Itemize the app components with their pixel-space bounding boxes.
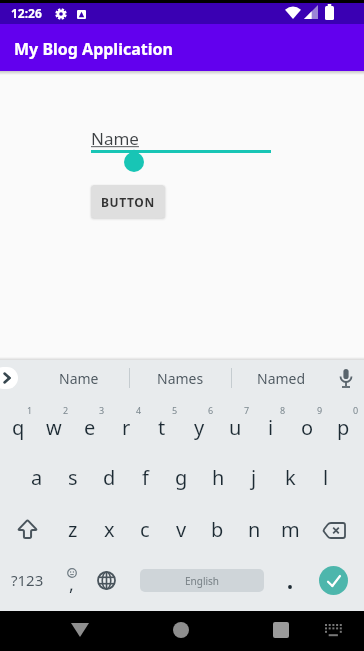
staticText: BUTTON [101,194,155,210]
button[interactable]: w [36,403,72,451]
staticText: , [69,572,74,597]
staticText: 6 [208,404,214,416]
staticText: w [46,414,62,441]
staticText: 2 [63,404,69,416]
button[interactable] [325,624,343,637]
button[interactable]: r [108,403,144,451]
button[interactable]: d [91,453,127,501]
button[interactable]: k [272,453,308,501]
staticText: My Blog Application [14,38,173,60]
button[interactable] [278,566,302,596]
button[interactable]: m [272,505,308,553]
button[interactable] [17,519,38,539]
button[interactable]: h [200,453,236,501]
staticText: u [229,414,242,441]
button[interactable]: ?123 [8,566,46,593]
button[interactable] [339,369,353,389]
staticText: c [140,516,150,543]
button[interactable] [71,623,89,637]
button[interactable] [322,522,346,539]
staticText: f [142,464,149,491]
button[interactable]: o [289,403,325,451]
staticText: n [248,516,261,543]
staticText: s [68,464,78,491]
button[interactable]: i [253,403,289,451]
staticText: Name [59,369,99,388]
staticText: e [84,414,96,441]
staticText: b [211,516,224,543]
staticText: English [185,574,220,588]
staticText: g [175,464,188,491]
staticText: 7 [244,404,250,416]
button[interactable]: a [19,453,55,501]
staticText: q [12,414,25,441]
button[interactable]: z [55,505,91,553]
staticText: i [268,414,274,441]
button[interactable]: Named [235,362,327,394]
staticText: ?123 [11,570,44,590]
button[interactable]: Name [33,362,125,394]
staticText: 12:26 [11,5,42,21]
staticText: p [337,414,350,441]
button[interactable]: l [308,453,344,501]
staticText: l [323,464,329,491]
button[interactable]: BUTTON [91,185,165,218]
staticText: 1 [27,404,33,416]
button[interactable] [273,622,289,638]
button[interactable]: u [217,403,253,451]
button[interactable]: q [0,403,36,451]
button[interactable] [319,566,348,595]
staticText: x [104,516,115,543]
staticText: v [176,516,187,543]
staticText: r [122,414,131,441]
button[interactable]: p [325,403,361,451]
staticText: 3 [99,404,105,416]
button[interactable]: n [236,505,272,553]
button[interactable]: c [127,505,163,553]
button[interactable] [0,367,18,389]
button[interactable]: s [55,453,91,501]
staticText: k [285,464,296,491]
button[interactable]: English [140,569,264,592]
button[interactable] [97,571,116,590]
staticText: m [281,516,300,543]
button[interactable]: g [163,453,199,501]
staticText: h [212,464,225,491]
staticText: o [301,414,314,441]
staticText: 0 [353,404,359,416]
button[interactable] [173,622,189,638]
staticText: Name [91,127,139,150]
button[interactable]: x [91,505,127,553]
button[interactable]: v [163,505,199,553]
staticText: z [68,516,78,543]
staticText: 9 [317,404,323,416]
staticText: d [103,464,116,491]
button[interactable]: j [236,453,272,501]
button[interactable]: Names [134,362,226,394]
staticText: 8 [280,404,286,416]
staticText: j [251,464,257,491]
button[interactable]: t [144,403,180,451]
staticText: 4 [136,404,142,416]
button[interactable]: f [127,453,163,501]
staticText: a [31,464,43,491]
staticText: 5 [172,404,178,416]
staticText: Names [157,369,204,388]
button[interactable]: y [181,403,217,451]
button[interactable]: , [60,564,86,596]
staticText: Named [257,369,306,388]
button[interactable]: b [199,505,235,553]
button[interactable]: e [72,403,108,451]
staticText: t [158,414,166,441]
staticText: y [194,414,205,441]
